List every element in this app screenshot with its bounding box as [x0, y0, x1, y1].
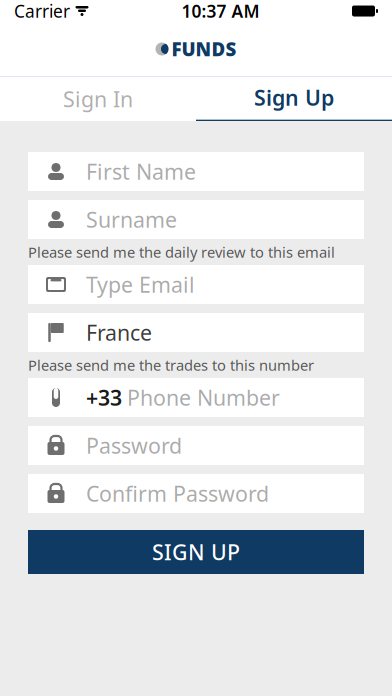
- staticText: Sign In: [63, 85, 133, 113]
- staticText: Please send me the trades to this number: [28, 355, 314, 375]
- button[interactable]: Sign Up: [196, 77, 392, 121]
- staticText: Carrier: [14, 0, 70, 22]
- button[interactable]: First Name: [28, 152, 364, 191]
- button[interactable]: +33: [28, 378, 364, 417]
- button[interactable]: Password: [28, 426, 364, 465]
- button[interactable]: Confirm Password: [28, 474, 364, 513]
- button[interactable]: Surname: [28, 200, 364, 239]
- staticText: Password: [86, 431, 182, 460]
- staticText: Type Email: [86, 270, 195, 299]
- staticText: Surname: [86, 205, 177, 234]
- staticText: 10:37 AM: [181, 0, 259, 22]
- staticText: Confirm Password: [86, 479, 269, 508]
- button[interactable]: France: [28, 313, 364, 352]
- staticText: First Name: [86, 157, 196, 186]
- button[interactable]: Sign In: [0, 77, 196, 121]
- staticText: Sign Up: [254, 83, 334, 112]
- staticText: FUNDS: [171, 37, 236, 61]
- staticText: France: [86, 318, 152, 347]
- staticText: +33: [86, 383, 122, 412]
- button[interactable]: SIGN UP: [28, 530, 364, 574]
- staticText: SIGN UP: [152, 538, 240, 566]
- staticText: Phone Number: [127, 383, 280, 412]
- button[interactable]: Type Email: [28, 265, 364, 304]
- staticText: Please send me the daily review to this …: [28, 242, 335, 262]
